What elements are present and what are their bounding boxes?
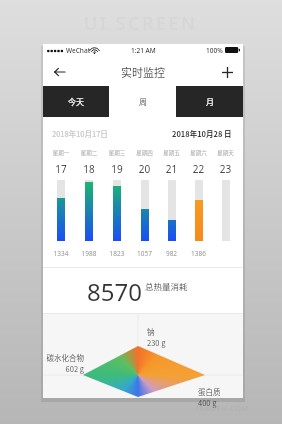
staticText: 星期一 [47,149,75,157]
staticText: 星期三 [103,149,131,157]
staticText: 星期五 [158,149,185,157]
staticText: 18 [75,162,103,176]
staticText: 今天 [68,96,84,108]
staticText: 1823 [103,249,131,258]
staticText: 月 [206,96,214,108]
staticText: 1988 [75,249,103,258]
staticText: 钠 230 g [147,326,166,348]
staticText: 1386 [185,249,212,258]
staticText: 19 [103,162,131,176]
button[interactable]: 月 [176,86,243,117]
staticText: 星期天 [212,149,239,157]
staticText: 总热量消耗 [145,280,188,292]
staticText: 碳水化合物 602 g [38,352,84,374]
button[interactable]: Back [48,61,70,83]
staticText: 星期四 [131,149,158,157]
staticText: 蛋白质 400 g [198,386,221,408]
staticText: 1:21 AM [131,46,156,55]
staticText: 22 [185,162,212,176]
staticText: 20 [131,162,158,176]
staticText: 星期二 [75,149,103,157]
staticText: 1334 [47,249,75,258]
staticText: 2018年10月17日 [52,128,108,139]
staticText: 8570 [87,275,142,308]
staticText: 21 [158,162,185,176]
staticText: 1057 [131,249,158,258]
button[interactable]: Add [216,61,238,83]
staticText: 实时监控 [121,64,165,80]
staticText: 982 [158,249,185,258]
staticText: 17 [47,162,75,176]
staticText: 23 [212,162,239,176]
staticText: IBAOTU.COM [196,404,250,414]
button[interactable]: 周 [109,86,176,117]
button[interactable]: 今天 [43,86,109,117]
staticText: WeChat [66,46,91,55]
staticText: 2018年10月28 日 [172,128,232,139]
staticText: 星期六 [185,149,212,157]
staticText: 100% [206,46,223,55]
staticText: 周 [139,96,147,108]
